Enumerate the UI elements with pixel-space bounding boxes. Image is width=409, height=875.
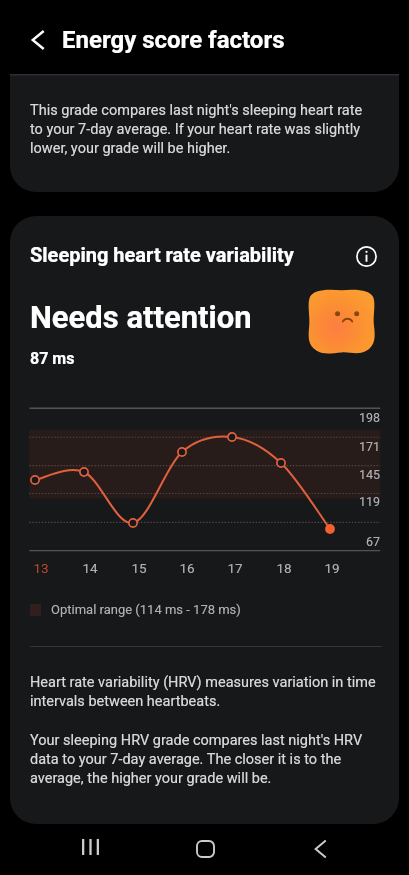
staticText: 171 bbox=[330, 439, 380, 454]
staticText: 119 bbox=[330, 494, 380, 509]
staticText: Optimal range (114 ms - 178 ms) bbox=[51, 602, 241, 617]
staticText: 13 bbox=[21, 560, 61, 576]
button[interactable]: Back bbox=[294, 828, 346, 870]
staticText: 145 bbox=[330, 467, 380, 482]
staticText: Heart rate variability (HRV) measures va… bbox=[30, 674, 395, 710]
staticText: 17 bbox=[215, 560, 255, 576]
staticText: 67 bbox=[330, 534, 380, 549]
staticText: This grade compares last night's sleepin… bbox=[30, 102, 377, 157]
staticText: 87 ms bbox=[30, 349, 75, 368]
button[interactable]: Home bbox=[179, 828, 231, 870]
staticText: Energy score factors bbox=[62, 26, 285, 54]
staticText: 14 bbox=[70, 560, 110, 576]
staticText: 16 bbox=[167, 560, 207, 576]
staticText: Sleeping heart rate variability bbox=[30, 243, 294, 266]
button[interactable]: Back bbox=[22, 24, 54, 56]
staticText: Needs attention bbox=[30, 299, 252, 335]
button[interactable]: Information bbox=[350, 240, 382, 272]
staticText: 18 bbox=[264, 560, 304, 576]
staticText: Your sleeping HRV grade compares last ni… bbox=[30, 732, 385, 787]
staticText: 198 bbox=[330, 410, 380, 425]
button[interactable]: Recent apps bbox=[64, 826, 116, 868]
staticText: 15 bbox=[119, 560, 159, 576]
staticText: 19 bbox=[312, 560, 352, 576]
